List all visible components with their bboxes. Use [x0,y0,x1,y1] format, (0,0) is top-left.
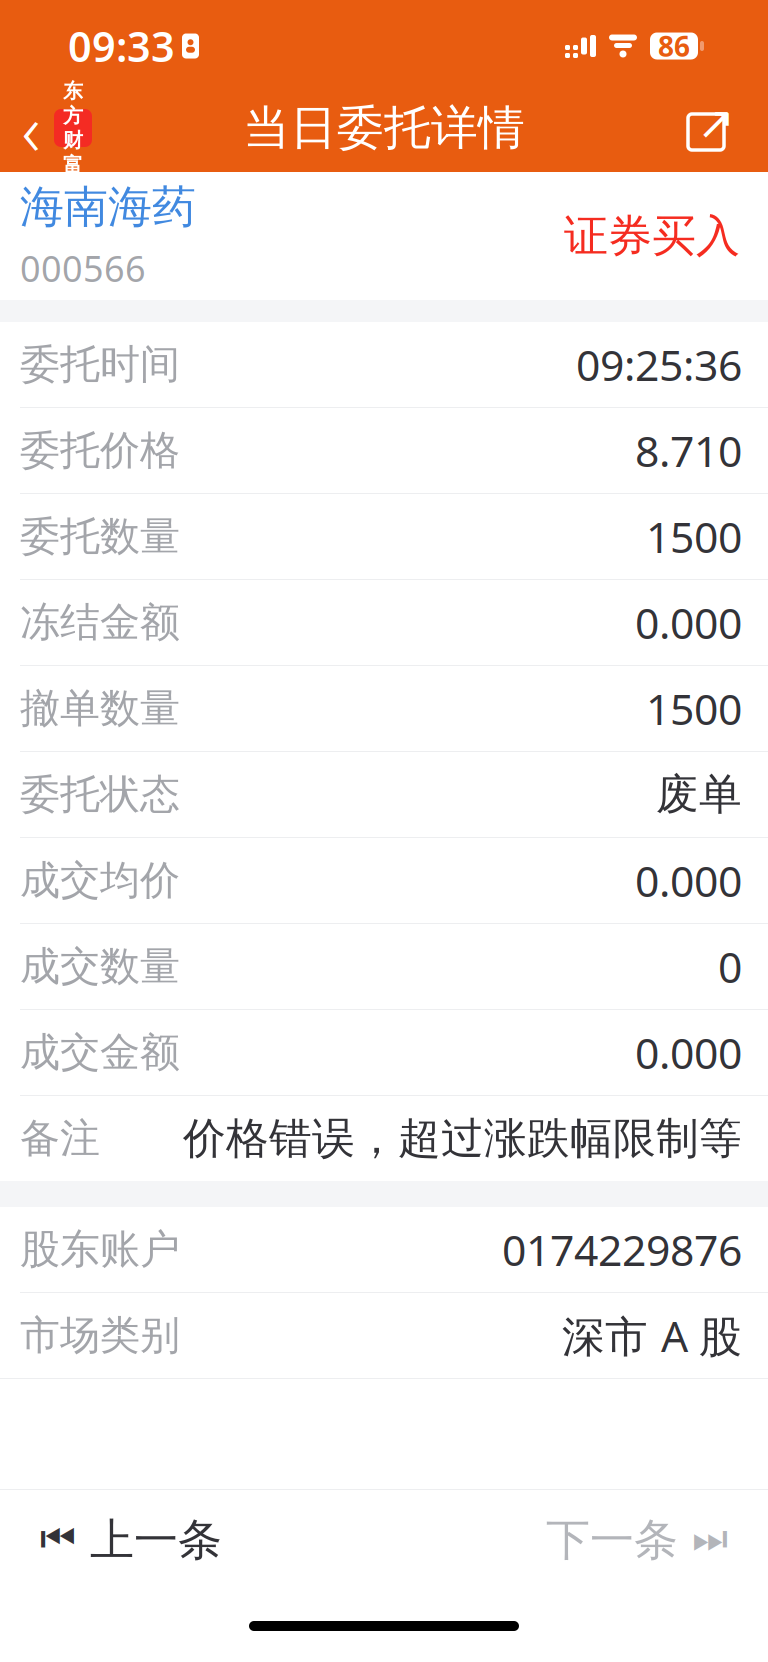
button[interactable]: 分享 [674,92,768,164]
staticText: 东方 [63,79,83,128]
staticText: 86 [658,27,690,65]
staticText: 成交数量 [20,942,180,991]
staticText: 备注 [20,1114,100,1163]
staticText: 委托数量 [20,512,180,561]
staticText: 09:33 [68,19,175,73]
staticText: 冻结金额 [20,598,180,647]
staticText: 000566 [20,244,146,292]
staticText: 证券买入 [564,209,740,263]
staticText: 0.000 [635,852,742,909]
staticText: 8.710 [635,422,742,479]
staticText: 当日委托详情 [243,99,525,157]
staticText: ↗ [697,97,735,149]
staticText: 1500 [646,680,742,737]
staticText: 价格错误，超过涨跌幅限制等 [183,1112,742,1165]
staticText: 09:25:36 [576,336,742,393]
staticText: 委托状态 [20,770,180,819]
staticText: 成交均价 [20,856,180,905]
button[interactable]: ⏮ [0,1490,252,1590]
staticText: 下一条 [546,1513,678,1567]
staticText: 市场类别 [20,1311,180,1360]
staticText: 海南海药 [20,180,196,234]
staticText: 财富 [63,128,83,177]
staticText: ‹ [21,80,40,176]
staticText: 股东账户 [20,1225,180,1274]
staticText: 0.000 [635,1024,742,1081]
staticText: 成交金额 [20,1028,180,1077]
staticText: 委托价格 [20,426,180,475]
staticText: ⏮ [40,1520,76,1559]
staticText: 上一条 [90,1513,222,1567]
button[interactable]: 返回 东方财富 [0,92,108,164]
staticText: 委托时间 [20,340,180,389]
staticText: 0 [718,938,742,995]
staticText: 1500 [646,508,742,565]
staticText: 深市 A 股 [562,1307,742,1364]
staticText: ⏭ [692,1520,728,1559]
staticText: 撤单数量 [20,684,180,733]
staticText: 0.000 [635,594,742,651]
staticText: 0174229876 [502,1221,742,1278]
staticText: 废单 [656,768,742,821]
button[interactable]: 下一条 [516,1490,768,1590]
